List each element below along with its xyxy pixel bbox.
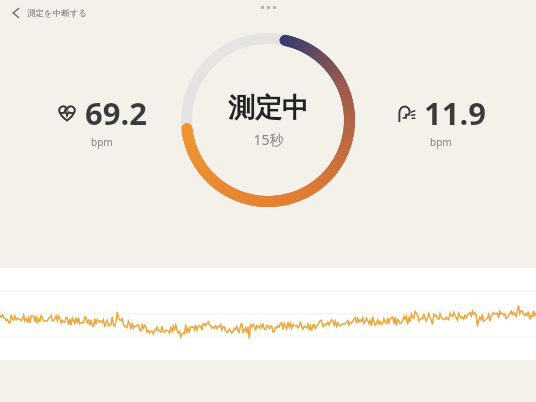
other: Heart rate <box>56 102 78 124</box>
staticText: 11.9 <box>424 92 486 134</box>
button[interactable]: 測定を中断する <box>6 2 92 24</box>
staticText: 測定中 <box>228 91 309 125</box>
button[interactable] <box>0 268 536 360</box>
button[interactable]: Respiration rate <box>391 88 490 153</box>
staticText: bpm <box>91 135 113 149</box>
other: Respiration rate <box>395 102 417 124</box>
staticText: 69.2 <box>85 92 147 134</box>
staticText: bpm <box>430 135 452 149</box>
button[interactable]: Heart rate <box>52 88 151 153</box>
staticText: 15秒 <box>253 130 284 149</box>
staticText: 測定を中断する <box>27 8 88 19</box>
button[interactable]: More options <box>253 2 284 13</box>
